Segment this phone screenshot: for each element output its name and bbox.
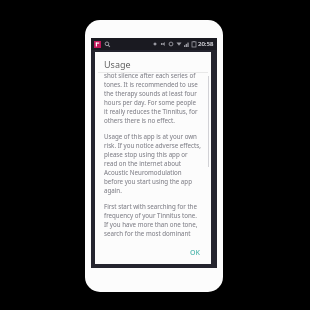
staticText: 20:58 xyxy=(198,40,214,48)
staticText: Usage xyxy=(104,58,131,70)
other: App notification xyxy=(94,41,101,48)
staticText: OK xyxy=(190,248,200,258)
staticText: Usage of this app is at your own risk. I… xyxy=(104,132,201,195)
button[interactable]: OK xyxy=(186,245,204,261)
staticText: shot silence after each series of tones.… xyxy=(104,73,201,125)
other: Search xyxy=(104,41,111,48)
staticText: First start with searching for the frequ… xyxy=(104,202,201,240)
